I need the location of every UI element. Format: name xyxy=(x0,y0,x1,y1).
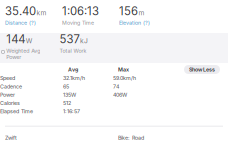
staticText: Show Less xyxy=(189,66,215,73)
staticText: Elevation (?) xyxy=(119,19,150,26)
staticText: 144 xyxy=(6,32,25,46)
button[interactable]: Show Less xyxy=(184,65,220,74)
staticText: Bike: Road xyxy=(118,134,144,141)
staticText: kJ xyxy=(80,37,88,45)
staticText: 537 xyxy=(60,32,80,46)
staticText: km xyxy=(36,9,46,17)
staticText: Avg xyxy=(68,66,78,73)
staticText: Moving Time xyxy=(62,19,94,26)
staticText: 135W xyxy=(63,91,76,98)
staticText: Speed xyxy=(0,75,15,81)
staticText: Power xyxy=(0,91,15,98)
staticText: Calories xyxy=(0,100,20,106)
staticText: Max xyxy=(118,66,129,73)
staticText: Zwift xyxy=(5,134,17,141)
staticText: m xyxy=(138,9,144,17)
staticText: 35.40 xyxy=(5,4,36,18)
staticText: W xyxy=(26,37,33,45)
staticText: 59.0km/h xyxy=(113,75,136,81)
staticText: Total Work xyxy=(60,47,87,54)
staticText: 512 xyxy=(63,100,71,106)
staticText: Weighted Avg Power xyxy=(6,47,40,60)
staticText: 406W xyxy=(113,91,127,98)
staticText: 65 xyxy=(63,83,69,90)
staticText: 74 xyxy=(113,83,119,90)
staticText: Distance (?) xyxy=(5,19,36,26)
staticText: 1:16:57 xyxy=(63,108,80,115)
staticText: 32.1km/h xyxy=(63,75,85,81)
staticText: Cadence xyxy=(0,83,22,90)
staticText: 156 xyxy=(119,4,138,18)
staticText: Elapsed Time xyxy=(0,108,33,115)
staticText: 1:06:13 xyxy=(62,4,99,18)
